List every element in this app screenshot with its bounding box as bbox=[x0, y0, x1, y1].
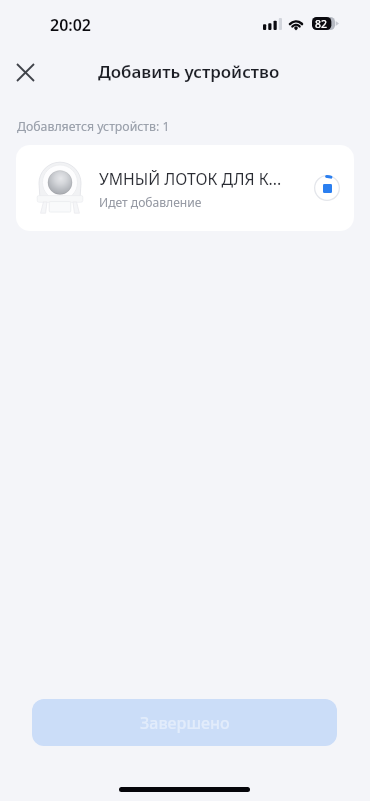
button[interactable]: УМНЫЙ ЛОТОК ДЛЯ К... bbox=[16, 145, 354, 231]
staticText: 20:02 bbox=[50, 14, 92, 36]
button[interactable]: Stop bbox=[314, 175, 340, 201]
staticText: Добавить устройство bbox=[98, 60, 280, 83]
staticText: УМНЫЙ ЛОТОК ДЛЯ К... bbox=[99, 168, 282, 190]
button[interactable]: Завершено bbox=[32, 699, 337, 746]
staticText: Добавляется устройств: 1 bbox=[17, 118, 170, 135]
staticText: 82 bbox=[315, 17, 328, 30]
staticText: Идет добавление bbox=[99, 194, 202, 210]
staticText: Завершено bbox=[140, 712, 230, 734]
button[interactable]: Close bbox=[7, 54, 43, 90]
